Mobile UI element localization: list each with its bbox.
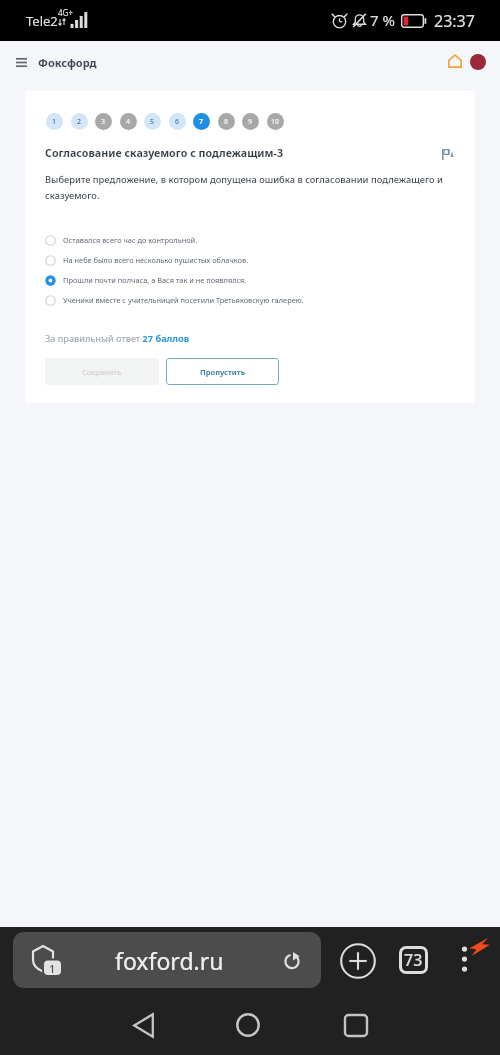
staticText: 7 bbox=[199, 117, 204, 127]
staticText: На небе было всего несколько пушистых об… bbox=[63, 255, 249, 265]
button[interactable]: Recents bbox=[332, 1001, 380, 1049]
button[interactable]: Profile bbox=[470, 54, 486, 70]
staticText: За правильный ответ 27 баллов bbox=[45, 332, 190, 345]
staticText: Пропустить bbox=[200, 367, 246, 377]
staticText: 23:37 bbox=[434, 10, 475, 32]
button[interactable]: На небе было всего несколько пушистых об… bbox=[45, 250, 455, 270]
button[interactable]: Пропустить bbox=[166, 358, 279, 385]
button[interactable]: Оставался всего час до контрольной. bbox=[45, 230, 455, 250]
button[interactable]: Прошли почти полчаса, а Вася так и не по… bbox=[45, 270, 455, 290]
button[interactable]: Ученики вместе с учительницей посетили Т… bbox=[45, 290, 455, 310]
button[interactable]: 4 bbox=[120, 113, 137, 130]
staticText: 1 bbox=[52, 117, 57, 127]
button[interactable]: 8 bbox=[218, 113, 235, 130]
button[interactable]: Tabs bbox=[396, 943, 430, 977]
button[interactable]: Сохранить bbox=[45, 358, 159, 385]
button[interactable]: 6 bbox=[169, 113, 186, 130]
staticText: Оставался всего час до контрольной. bbox=[63, 235, 198, 245]
staticText: 10 bbox=[271, 117, 280, 127]
button[interactable]: Back bbox=[119, 1001, 167, 1049]
staticText: Согласование сказуемого с подлежащим-3 bbox=[45, 146, 284, 161]
button[interactable]: 1 bbox=[46, 113, 63, 130]
staticText: Фоксфорд bbox=[38, 55, 97, 70]
button[interactable]: 2 bbox=[71, 113, 88, 130]
staticText: 8 bbox=[224, 117, 229, 127]
staticText: Выберите предложение, в котором допущена… bbox=[45, 173, 455, 201]
staticText: 6 bbox=[175, 117, 180, 127]
staticText: foxford.ru bbox=[115, 945, 224, 976]
staticText: 73 bbox=[404, 949, 423, 971]
button[interactable]: Фоксфорд bbox=[38, 49, 97, 75]
button[interactable]: 1 bbox=[13, 932, 321, 988]
staticText: Сохранить bbox=[82, 367, 122, 377]
staticText: Tele2 bbox=[26, 12, 58, 30]
staticText: 4 bbox=[126, 117, 131, 127]
button[interactable]: Menu bbox=[12, 49, 30, 75]
button[interactable]: 9 bbox=[242, 113, 259, 130]
button[interactable]: 7 bbox=[193, 113, 210, 130]
staticText: 5 bbox=[150, 117, 155, 127]
staticText: 7 % bbox=[370, 10, 395, 30]
staticText: 4G+ bbox=[58, 7, 73, 18]
staticText: 3 bbox=[101, 117, 106, 127]
button[interactable]: 10 bbox=[267, 113, 284, 130]
staticText: 2 bbox=[77, 117, 82, 127]
button[interactable]: Home bbox=[444, 50, 466, 72]
button[interactable]: More options bbox=[455, 934, 490, 979]
staticText: 9 bbox=[248, 117, 253, 127]
button[interactable]: Reload bbox=[279, 947, 305, 973]
staticText: Ученики вместе с учительницей посетили Т… bbox=[63, 295, 304, 305]
staticText: 1 bbox=[49, 961, 56, 976]
staticText: Прошли почти полчаса, а Вася так и не по… bbox=[63, 275, 247, 285]
button[interactable]: Home bbox=[224, 1001, 272, 1049]
button[interactable]: New tab bbox=[337, 940, 378, 981]
button[interactable]: 5 bbox=[144, 113, 161, 130]
button[interactable]: 3 bbox=[95, 113, 112, 130]
